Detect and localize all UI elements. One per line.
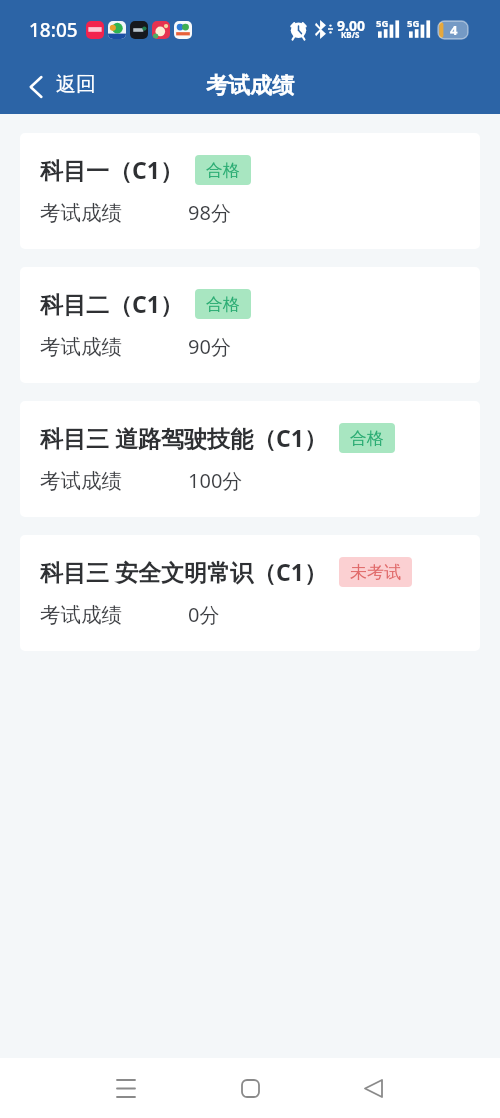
button[interactable]: 科目三 安全文明常识（C1） xyxy=(20,535,480,651)
staticText: 科目一（C1） xyxy=(40,154,183,184)
staticText: 考试成绩 xyxy=(40,602,122,628)
button[interactable]: 返回 xyxy=(0,64,110,109)
staticText: 科目三 安全文明常识（C1） xyxy=(40,556,327,586)
staticText: 4 xyxy=(450,21,458,39)
staticText: 考试成绩 xyxy=(40,200,122,226)
staticText: 合格 xyxy=(206,160,240,181)
staticText: 合格 xyxy=(206,294,240,315)
staticText: 9.00 xyxy=(337,16,365,35)
staticText: 考试成绩 xyxy=(40,468,122,494)
button[interactable]: 科目三 道路驾驶技能（C1） xyxy=(20,401,480,517)
staticText: 90分 xyxy=(188,333,231,360)
button[interactable]: 科目二（C1） xyxy=(20,267,480,383)
staticText: 考试成绩 xyxy=(40,334,122,360)
staticText: 合格 xyxy=(350,428,384,449)
button[interactable]: Back xyxy=(353,1068,393,1108)
staticText: 5G xyxy=(407,17,420,30)
staticText: 考试成绩 xyxy=(206,72,294,100)
staticText: KB/S xyxy=(341,29,360,40)
staticText: 未考试 xyxy=(350,562,401,583)
button[interactable]: Recent apps xyxy=(106,1068,146,1108)
staticText: 5G xyxy=(376,17,389,30)
staticText: 科目二（C1） xyxy=(40,288,183,318)
staticText: 100分 xyxy=(188,467,243,494)
staticText: 98分 xyxy=(188,199,231,226)
button[interactable]: Home xyxy=(230,1068,270,1108)
staticText: 0分 xyxy=(188,601,220,628)
staticText: 返回 xyxy=(56,72,96,97)
staticText: 18:05 xyxy=(29,17,78,43)
button[interactable]: 科目一（C1） xyxy=(20,133,480,249)
staticText: 科目三 道路驾驶技能（C1） xyxy=(40,422,327,452)
